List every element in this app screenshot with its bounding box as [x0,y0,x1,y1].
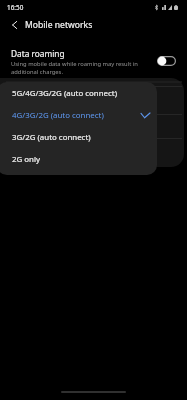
button[interactable]: 2G only [0,148,157,170]
button[interactable]: 5G/4G/3G/2G (auto connect) [0,82,157,104]
staticText: Using mobile data while roaming may resu… [11,60,151,76]
button[interactable]: 3G/2G (auto connect) [0,126,157,148]
staticText: Data roaming [11,48,65,59]
staticText: 16:50 [7,3,24,12]
staticText: 4G/3G/2G (auto connect) [12,110,104,121]
button[interactable]: Data roaming off [157,56,176,66]
staticText: Mobile networks [25,19,93,31]
staticText: 2G only [12,154,41,165]
staticText: 3G/2G (auto connect) [12,132,91,143]
button[interactable]: Back [4,15,24,35]
button[interactable]: Data roaming [0,40,187,78]
staticText: 5G/4G/3G/2G (auto connect) [12,88,118,99]
button[interactable]: 4G/3G/2G (auto connect) [0,104,157,126]
